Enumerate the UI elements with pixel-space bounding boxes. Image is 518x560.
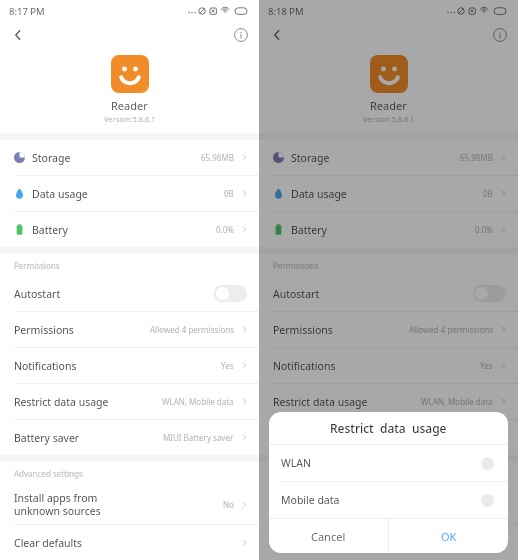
button[interactable]: Mobile data [269, 482, 508, 518]
staticText: MIUI Battery saver [163, 432, 234, 443]
staticText: Battery [32, 223, 68, 237]
staticText: Reader [370, 98, 407, 113]
staticText: Permissions [14, 323, 74, 337]
staticText: OK [441, 529, 457, 544]
button[interactable]: Battery [259, 212, 518, 247]
staticText: Version:5.8.6.1 [363, 114, 415, 124]
button[interactable]: Clear defaults [0, 525, 259, 560]
staticText: Install apps from unknown sources [14, 491, 101, 518]
staticText: Reader [111, 98, 148, 113]
button[interactable]: Install apps from unknown sources [0, 484, 259, 524]
button[interactable]: Permissions [0, 312, 259, 347]
button[interactable]: Restrict data usage [0, 384, 259, 419]
staticText: Advanced settings [14, 468, 83, 479]
staticText: Allowed 4 permissions [409, 324, 493, 335]
button[interactable]: Notifications [0, 348, 259, 383]
staticText: Autostart [273, 287, 320, 301]
button[interactable]: Cancel [269, 519, 388, 553]
staticText: 0B [224, 188, 234, 199]
button[interactable]: Data usage [259, 176, 518, 211]
button[interactable]: App info [488, 23, 512, 47]
staticText: Storage [32, 151, 71, 165]
staticText: 0.0% [475, 224, 493, 235]
staticText: Restrict data usage [14, 395, 109, 409]
staticText: Permissions [14, 260, 60, 271]
staticText: WLAN, Mobile data [421, 396, 493, 407]
button[interactable]: Permissions [259, 312, 518, 347]
staticText: Cancel [311, 529, 346, 544]
button[interactable]: Autostart [0, 276, 259, 311]
staticText: MIUI Battery saver [422, 432, 493, 443]
staticText: Restrict data usage [273, 395, 368, 409]
staticText: Notifications [273, 359, 336, 373]
button[interactable]: OK [389, 519, 508, 553]
staticText: 65.98MB [201, 152, 234, 163]
button[interactable]: Storage [259, 140, 518, 175]
button[interactable]: Autostart [259, 276, 518, 311]
staticText: WLAN [281, 456, 311, 470]
staticText: Clear defaults [14, 536, 83, 550]
staticText: Battery saver [14, 431, 80, 445]
staticText: Install apps from unknown sources [273, 491, 360, 518]
staticText: Version:5.8.6.1 [104, 114, 156, 124]
staticText: Permissions [273, 260, 319, 271]
button[interactable]: Notifications [259, 348, 518, 383]
staticText: Notifications [14, 359, 77, 373]
button[interactable]: App info [229, 23, 253, 47]
staticText: No [482, 499, 493, 510]
staticText: Data usage [32, 187, 88, 201]
staticText: Permissions [273, 323, 333, 337]
staticText: Clear defaults [273, 536, 342, 550]
staticText: Battery saver [273, 431, 339, 445]
staticText: 8:17 PM [9, 5, 45, 18]
button[interactable]: Battery saver [0, 420, 259, 455]
button[interactable]: WLAN [269, 445, 508, 481]
staticText: 0.0% [216, 224, 234, 235]
button[interactable]: Battery [0, 212, 259, 247]
button[interactable]: Restrict data usage [259, 384, 518, 419]
staticText: Data usage [291, 187, 347, 201]
button[interactable]: Battery saver [259, 420, 518, 455]
button[interactable]: Install apps from unknown sources [259, 484, 518, 524]
staticText: Mobile data [281, 493, 340, 507]
button[interactable]: Clear defaults [259, 525, 518, 560]
staticText: Yes [480, 360, 493, 371]
staticText: 0B [483, 188, 493, 199]
staticText: Battery [291, 223, 327, 237]
staticText: Allowed 4 permissions [150, 324, 234, 335]
button[interactable]: Storage [0, 140, 259, 175]
staticText: Storage [291, 151, 330, 165]
staticText: Yes [221, 360, 234, 371]
staticText: 65.98MB [460, 152, 493, 163]
button[interactable]: Back [265, 23, 289, 47]
button[interactable]: Back [6, 23, 30, 47]
staticText: WLAN, Mobile data [162, 396, 234, 407]
staticText: Restrict data usage [330, 420, 447, 436]
button[interactable]: Data usage [0, 176, 259, 211]
staticText: 8:18 PM [268, 5, 304, 18]
staticText: Autostart [14, 287, 61, 301]
staticText: No [223, 499, 234, 510]
